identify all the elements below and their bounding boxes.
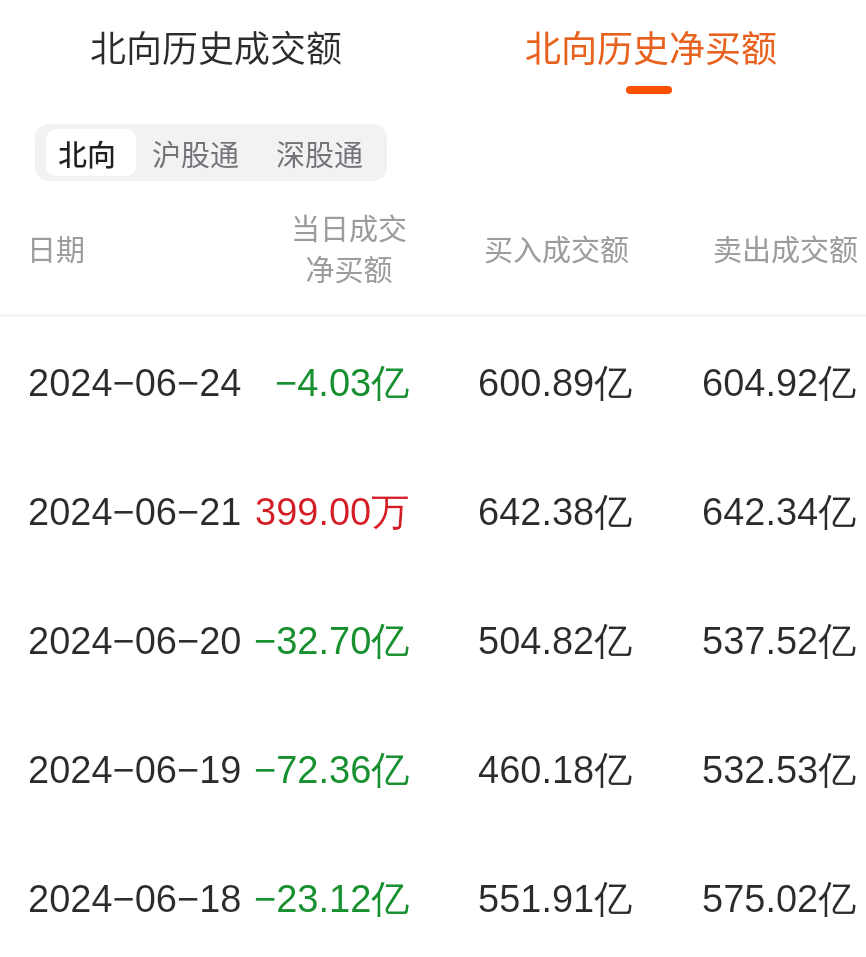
staticText: 2024−06−19 bbox=[28, 749, 242, 791]
staticText: −72.36亿 bbox=[254, 746, 410, 794]
staticText: 2024−06−21 bbox=[28, 491, 242, 533]
staticText: 北向历史成交额 bbox=[90, 20, 343, 72]
staticText: 642.38亿 bbox=[478, 488, 633, 536]
button[interactable]: 2024−06−21 bbox=[0, 447, 866, 576]
button[interactable]: 深股通 bbox=[272, 124, 367, 181]
staticText: −4.03亿 bbox=[275, 359, 410, 407]
staticText: 532.53亿 bbox=[702, 746, 857, 794]
staticText: 399.00万 bbox=[255, 488, 410, 536]
button[interactable]: 北向历史净买额 bbox=[435, 0, 866, 110]
staticText: −32.70亿 bbox=[254, 617, 410, 665]
staticText: 2024−06−18 bbox=[28, 878, 242, 920]
button[interactable]: 2024−06−20 bbox=[0, 576, 866, 705]
staticText: 沪股通 bbox=[152, 132, 240, 174]
button[interactable]: 2024−06−19 bbox=[0, 705, 866, 834]
staticText: 当日成交 净买额 bbox=[239, 206, 459, 289]
staticText: 460.18亿 bbox=[478, 746, 633, 794]
staticText: 604.92亿 bbox=[702, 359, 857, 407]
staticText: 642.34亿 bbox=[702, 488, 857, 536]
staticText: 537.52亿 bbox=[702, 617, 857, 665]
staticText: 深股通 bbox=[276, 132, 364, 174]
staticText: 2024−06−24 bbox=[28, 362, 242, 404]
staticText: −23.12亿 bbox=[254, 875, 410, 923]
staticText: 买入成交额 bbox=[484, 227, 630, 269]
staticText: 504.82亿 bbox=[478, 617, 633, 665]
button[interactable]: 2024−06−18 bbox=[0, 834, 866, 957]
staticText: 北向历史净买额 bbox=[525, 20, 778, 72]
staticText: 2024−06−20 bbox=[28, 620, 242, 662]
staticText: 日期 bbox=[27, 227, 86, 269]
button[interactable]: 北向 bbox=[46, 129, 136, 176]
button[interactable]: 北向历史成交额 bbox=[0, 0, 433, 110]
button[interactable]: 2024−06−24 bbox=[0, 318, 866, 447]
staticText: 卖出成交额 bbox=[713, 227, 859, 269]
staticText: 600.89亿 bbox=[478, 359, 633, 407]
staticText: 北向 bbox=[58, 132, 117, 174]
button[interactable]: 沪股通 bbox=[148, 124, 243, 181]
staticText: 551.91亿 bbox=[478, 875, 633, 923]
staticText: 575.02亿 bbox=[702, 875, 857, 923]
